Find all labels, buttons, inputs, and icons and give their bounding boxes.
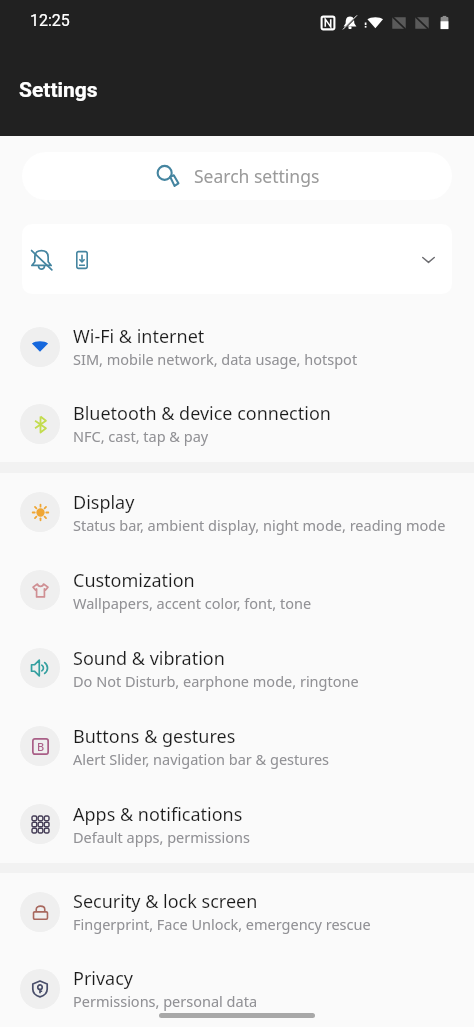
staticText: 12:25 [30,11,70,30]
staticText: Customization [73,568,195,593]
staticText: B [37,739,45,754]
staticText: Fingerprint, Face Unlock, emergency resc… [73,914,371,934]
staticText: NFC, cast, tap & pay [73,426,209,446]
staticText: Status bar, ambient display, night mode,… [73,515,446,535]
button[interactable]: Expand [420,251,437,268]
staticText: Alert Slider, navigation bar & gestures [73,749,330,769]
staticText: Search settings [194,164,320,188]
button[interactable]: Display [0,473,474,551]
staticText: Bluetooth & device connection [73,401,331,426]
staticText: Settings [19,78,98,103]
button[interactable]: Customization [0,551,474,629]
button[interactable]: Wi-Fi & internet [0,308,474,385]
staticText: Wallpapers, accent color, font, tone [73,593,312,613]
button[interactable]: Security & lock screen [0,873,474,950]
staticText: Do Not Disturb, earphone mode, ringtone [73,671,359,691]
button[interactable]: Apps & notifications [0,785,474,863]
button[interactable]: Sound & vibration [0,629,474,707]
button[interactable]: Do Not Disturb [22,224,452,294]
staticText: Display [73,490,135,515]
staticText: Privacy [73,966,134,991]
staticText: Buttons & gestures [73,724,236,749]
staticText: Apps & notifications [73,802,243,827]
staticText: Wi-Fi & internet [73,324,205,349]
staticText: Permissions, personal data [73,991,258,1011]
button[interactable]: Do Not Disturb [30,248,53,271]
button[interactable]: B [0,707,474,785]
staticText: Sound & vibration [73,646,225,671]
staticText: SIM, mobile network, data usage, hotspot [73,349,358,369]
button[interactable]: Bluetooth & device connection [0,385,474,462]
button[interactable]: Privacy [0,950,474,1027]
staticText: Security & lock screen [73,889,258,914]
button[interactable]: Search settings [22,152,452,200]
staticText: Default apps, permissions [73,827,250,847]
button[interactable]: System update [72,250,92,270]
